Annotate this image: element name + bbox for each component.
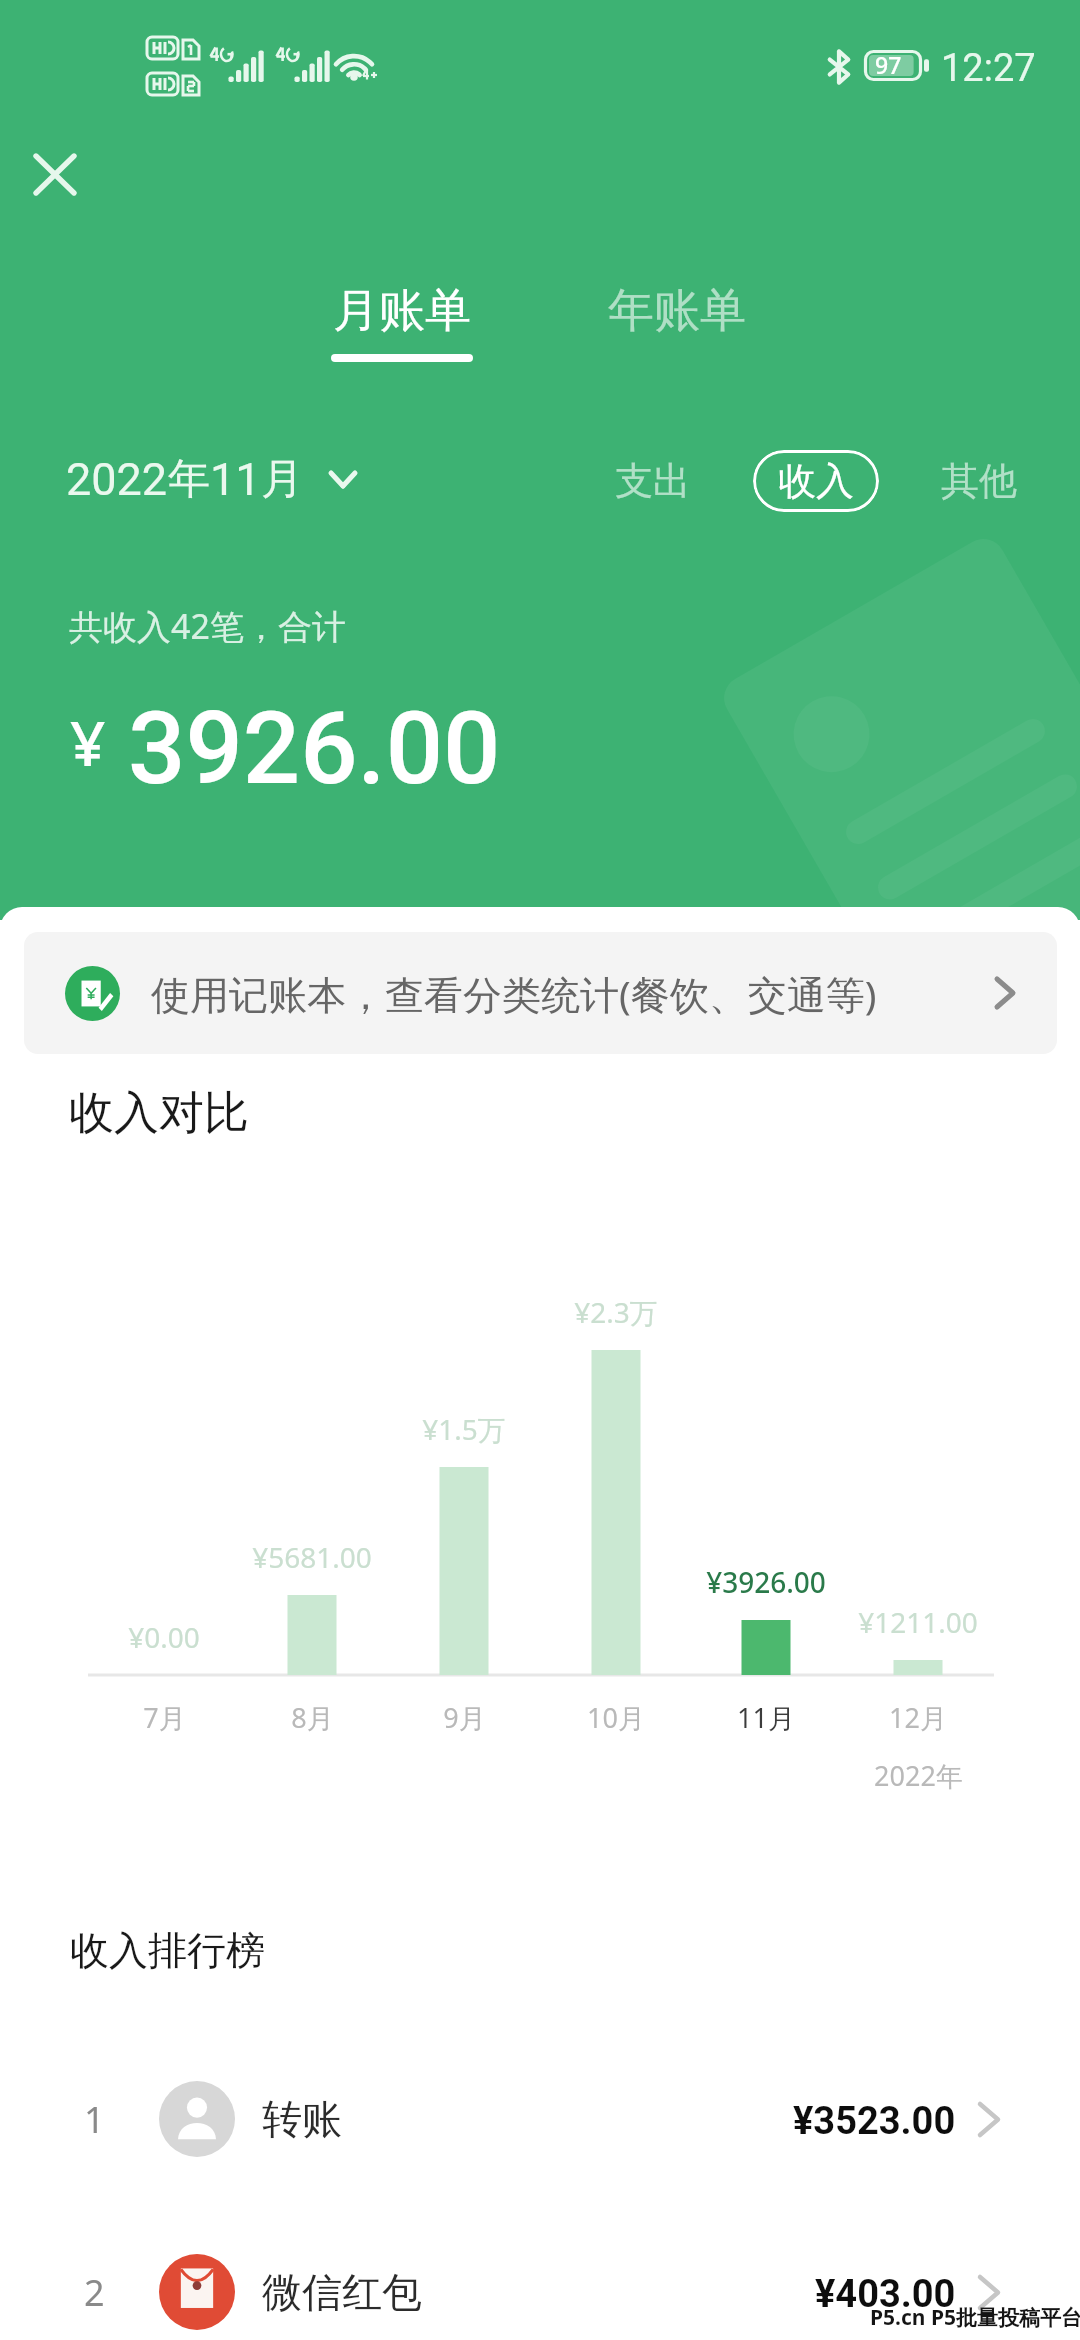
staticText: ¥5681.00 xyxy=(252,1538,372,1576)
button[interactable]: 收入 xyxy=(753,450,879,512)
button[interactable]: 年账单 xyxy=(557,278,797,344)
button[interactable]: 月账单 xyxy=(282,278,522,378)
staticText: 11 xyxy=(210,453,261,506)
staticText: 97 xyxy=(875,49,902,80)
staticText: 收入对比 xyxy=(69,1085,249,1135)
staticText: 共收入42笔，合计 xyxy=(69,603,346,649)
staticText: 其他 xyxy=(941,457,1017,505)
staticText: 8月 xyxy=(291,1699,334,1736)
staticText: 转账 xyxy=(262,2094,342,2144)
button[interactable]: 1 xyxy=(0,2044,1080,2194)
staticText: 7月 xyxy=(143,1699,186,1736)
button[interactable]: 支出 xyxy=(597,450,709,512)
button[interactable]: 使用记账本，查看分类统计(餐饮、交通等) xyxy=(24,932,1057,1054)
staticText: 收入排行榜 xyxy=(70,1926,265,1975)
staticText: 10月 xyxy=(587,1699,645,1736)
staticText: 月账单 xyxy=(333,282,471,340)
staticText: 年 xyxy=(168,453,210,506)
staticText: 2022 xyxy=(66,453,168,506)
staticText: 11月 xyxy=(737,1699,795,1736)
staticText: 年账单 xyxy=(608,282,746,340)
staticText: 12:27 xyxy=(941,46,1036,91)
button[interactable]: 其他 xyxy=(923,450,1035,512)
staticText: 使用记账本，查看分类统计(餐饮、交通等) xyxy=(151,967,877,1020)
staticText: ¥1.5万 xyxy=(422,1410,506,1448)
staticText: ¥403.00 xyxy=(815,2272,956,2317)
staticText: ¥ xyxy=(70,700,106,784)
button[interactable]: 2022 xyxy=(66,449,357,509)
staticText: P5.cn P5批量投稿平台 xyxy=(870,2303,1080,2332)
staticText: 3926.00 xyxy=(128,689,501,793)
staticText: ¥3926.00 xyxy=(706,1563,826,1601)
staticText: 2022年 xyxy=(874,1757,963,1794)
staticText: 12月 xyxy=(889,1699,947,1736)
staticText: 月 xyxy=(261,453,303,506)
staticText: ¥2.3万 xyxy=(574,1293,658,1331)
staticText: 2 xyxy=(84,2268,105,2317)
button[interactable]: 2 xyxy=(0,2217,1080,2340)
staticText: 微信红包 xyxy=(262,2267,422,2317)
staticText: 9月 xyxy=(443,1699,486,1736)
staticText: ¥1211.00 xyxy=(858,1603,978,1641)
staticText: ¥0.00 xyxy=(128,1618,200,1656)
button[interactable]: Close xyxy=(16,135,94,213)
staticText: 支出 xyxy=(615,457,691,505)
staticText: 1 xyxy=(84,2095,105,2144)
staticText: ¥3523.00 xyxy=(793,2099,956,2144)
staticText: 收入 xyxy=(778,457,854,505)
